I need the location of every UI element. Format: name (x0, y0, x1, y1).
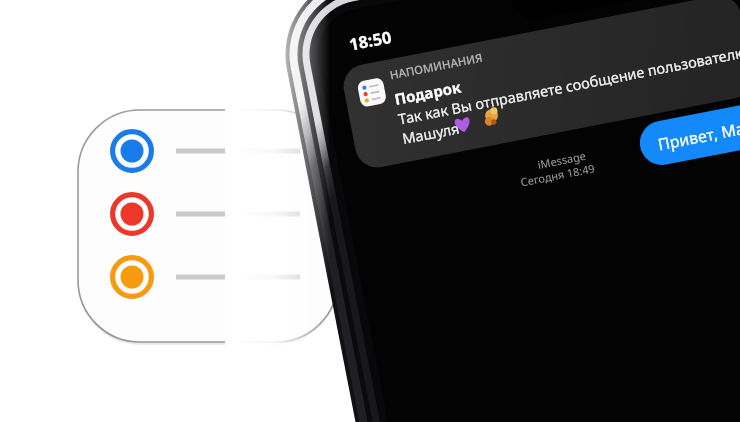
button[interactable]: Reminders notification on iPhone (0, 0, 740, 422)
